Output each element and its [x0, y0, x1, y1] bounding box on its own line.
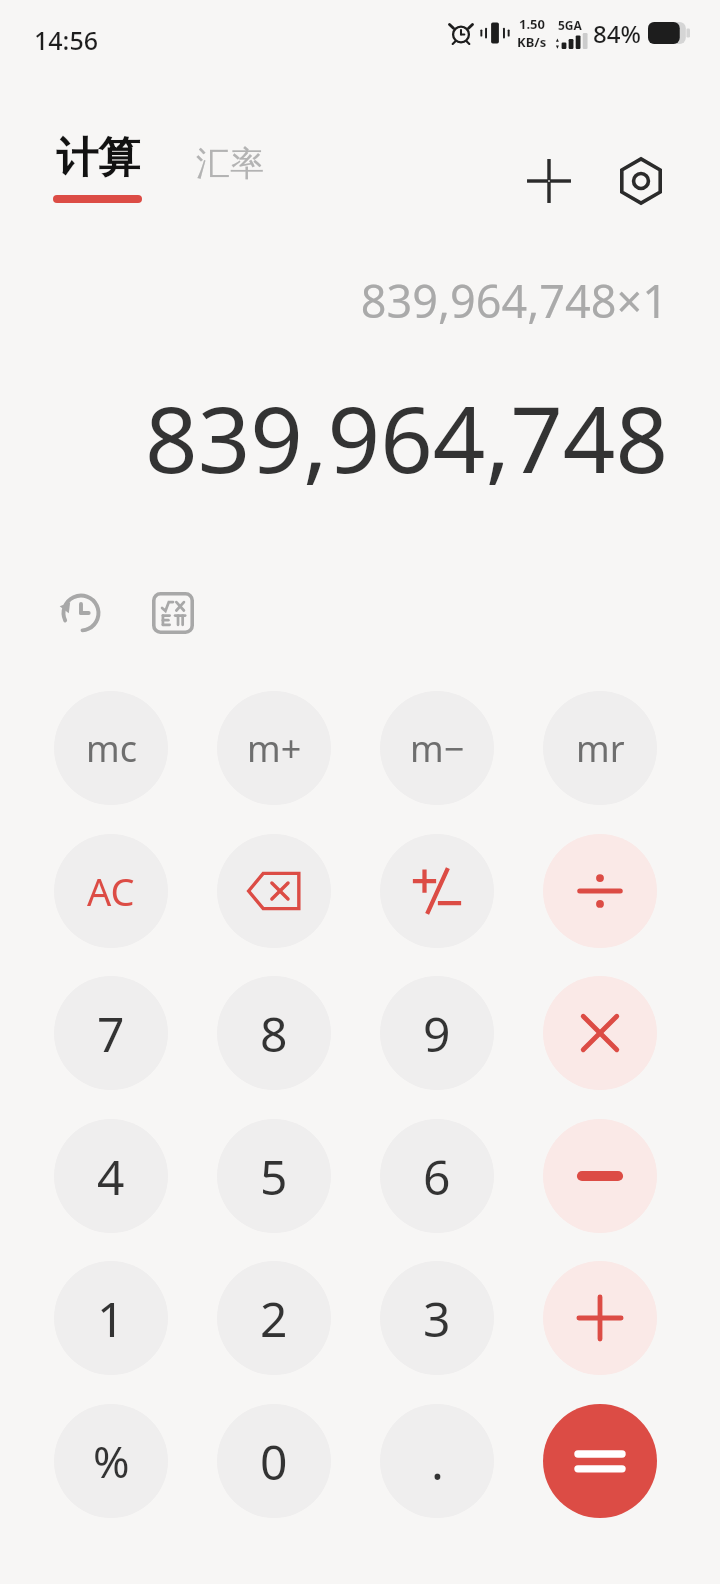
staticText: AC [87, 865, 135, 917]
button[interactable]: m− [380, 691, 494, 805]
staticText: mr [576, 724, 625, 773]
button[interactable]: 4 [54, 1119, 168, 1233]
staticText: 6 [423, 1144, 451, 1209]
staticText: 1.50 [519, 15, 545, 33]
button[interactable]: 汇率 [188, 136, 272, 191]
button[interactable]: Split screen [512, 144, 586, 218]
button[interactable]: Backspace [217, 834, 331, 948]
staticText: 84% [593, 17, 641, 50]
staticText: 计算 [56, 132, 140, 185]
staticText: 5 [260, 1144, 288, 1209]
button[interactable]: Plus [543, 1261, 657, 1375]
staticText: 0 [260, 1429, 288, 1494]
button[interactable]: AC [54, 834, 168, 948]
staticText: 7 [97, 1001, 125, 1066]
button[interactable]: History [46, 578, 116, 648]
button[interactable]: . [380, 1404, 494, 1518]
button[interactable]: mc [54, 691, 168, 805]
button[interactable]: Scientific functions [138, 578, 208, 648]
button[interactable]: 1 [54, 1261, 168, 1375]
staticText: 839,964,748 [52, 375, 668, 500]
button[interactable]: 3 [380, 1261, 494, 1375]
staticText: m− [410, 724, 465, 773]
button[interactable]: 2 [217, 1261, 331, 1375]
button[interactable]: Multiply [543, 976, 657, 1090]
staticText: 839,964,748×1 [52, 270, 668, 331]
staticText: 2 [260, 1286, 288, 1351]
staticText: % [93, 1431, 130, 1491]
button[interactable]: Settings [604, 144, 678, 218]
staticText: mc [86, 724, 137, 773]
button[interactable]: 9 [380, 976, 494, 1090]
staticText: 4 [97, 1144, 125, 1209]
button[interactable]: Divide [543, 834, 657, 948]
button[interactable]: 7 [54, 976, 168, 1090]
staticText: 汇率 [196, 142, 264, 185]
button[interactable]: 计算 [47, 128, 148, 207]
button[interactable]: Minus [543, 1119, 657, 1233]
button[interactable]: mr [543, 691, 657, 805]
staticText: 5GA [558, 17, 582, 33]
staticText: 3 [423, 1286, 451, 1351]
staticText: 8 [260, 1001, 288, 1066]
button[interactable]: Equals [543, 1404, 657, 1518]
staticText: . [431, 1429, 444, 1494]
staticText: KB/s [517, 33, 547, 51]
staticText: 14:56 [34, 23, 99, 57]
button[interactable]: Toggle sign [380, 834, 494, 948]
staticText: m+ [247, 724, 302, 773]
staticText: 9 [423, 1001, 451, 1066]
button[interactable]: % [54, 1404, 168, 1518]
staticText: 1 [97, 1286, 125, 1351]
button[interactable]: m+ [217, 691, 331, 805]
button[interactable]: 8 [217, 976, 331, 1090]
button[interactable]: 6 [380, 1119, 494, 1233]
button[interactable]: 5 [217, 1119, 331, 1233]
button[interactable]: 0 [217, 1404, 331, 1518]
